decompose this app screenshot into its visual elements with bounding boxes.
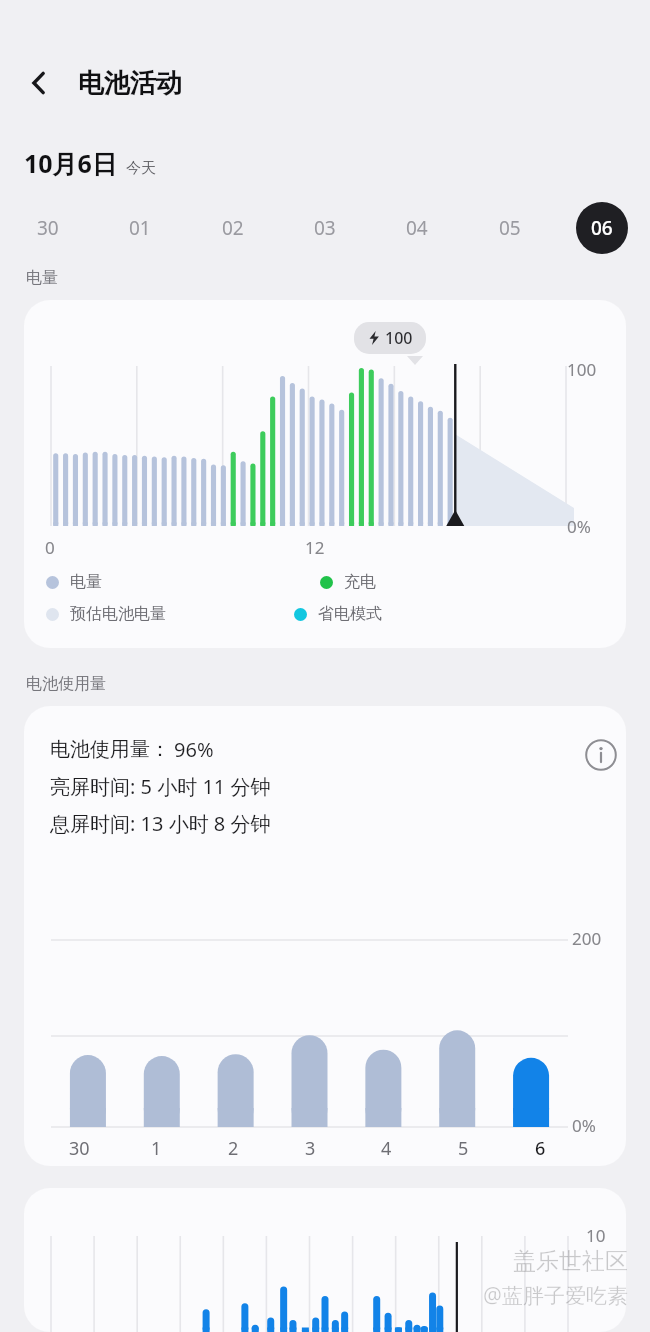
staticText: 03 <box>314 215 336 241</box>
staticText: 5 <box>458 1136 469 1161</box>
staticText: 06 <box>591 215 613 241</box>
staticText: 预估电池电量 <box>70 604 166 624</box>
staticText: 6 <box>535 1136 546 1161</box>
staticText: 4 <box>381 1136 392 1161</box>
staticText: 电池活动 <box>78 67 182 100</box>
staticText: 3 <box>305 1136 316 1161</box>
staticText: 电池使用量 <box>26 674 106 694</box>
button[interactable]: 02 <box>207 202 259 254</box>
button[interactable]: 01 <box>114 202 166 254</box>
staticText: 电量 <box>26 268 58 288</box>
staticText: 充电 <box>344 572 376 592</box>
button[interactable]: 电池使用量： <box>24 706 626 1166</box>
staticText: 100 <box>567 358 597 381</box>
staticText: 01 <box>129 215 151 241</box>
button[interactable]: 03 <box>299 202 351 254</box>
button[interactable]: 100 <box>24 300 626 648</box>
staticText: 亮屏时间: 5 小时 11 分钟 <box>50 773 271 800</box>
staticText: 省电模式 <box>318 604 382 624</box>
staticText: 30 <box>37 215 59 241</box>
staticText: 0% <box>572 1114 596 1137</box>
staticText: 02 <box>222 215 244 241</box>
staticText: 电量 <box>70 572 102 592</box>
staticText: 12 <box>305 536 325 559</box>
staticText: 息屏时间: 13 小时 8 分钟 <box>50 810 271 837</box>
staticText: 电池使用量： <box>50 737 170 762</box>
staticText: 05 <box>499 215 521 241</box>
button[interactable]: 10 <box>24 1188 626 1332</box>
button[interactable]: Back <box>0 52 78 114</box>
staticText: 2 <box>228 1136 239 1161</box>
button[interactable]: 04 <box>391 202 443 254</box>
staticText: 30 <box>69 1136 90 1161</box>
staticText: 今天 <box>126 159 156 178</box>
button[interactable]: Info <box>576 730 626 780</box>
staticText: 0% <box>567 515 591 538</box>
staticText: 10 <box>586 1224 606 1247</box>
button[interactable]: 30 <box>22 202 74 254</box>
staticText: 04 <box>406 215 428 241</box>
staticText: 盖乐世社区 <box>513 1247 628 1276</box>
staticText: 100 <box>385 327 413 349</box>
staticText: 96% <box>174 736 214 763</box>
button[interactable]: 06 <box>576 202 628 254</box>
staticText: 10月6日 <box>24 146 117 180</box>
staticText: 1 <box>151 1136 162 1161</box>
button[interactable]: 05 <box>484 202 536 254</box>
staticText: 0 <box>45 536 55 559</box>
staticText: @蓝胖子爱吃素 <box>483 1281 628 1310</box>
staticText: 200 <box>572 927 602 950</box>
